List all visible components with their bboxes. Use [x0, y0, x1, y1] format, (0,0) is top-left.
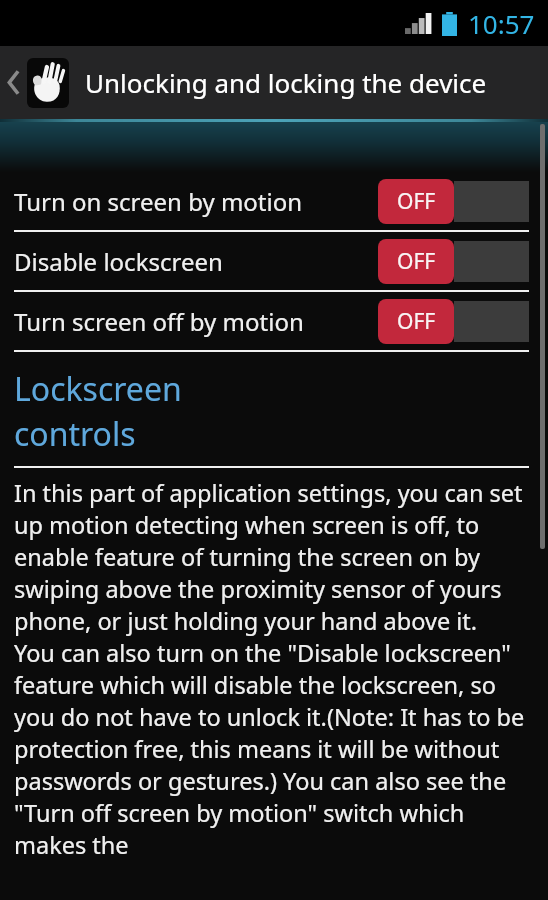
button[interactable]: Turn on: [378, 239, 529, 284]
button[interactable]: Navigate up: [0, 46, 72, 119]
staticText: In this part of application settings, yo…: [14, 477, 526, 861]
button[interactable]: Disable lockscreen: [0, 232, 548, 290]
button[interactable]: Turn on: [378, 299, 529, 344]
staticText: OFF: [397, 307, 436, 336]
staticText: 10:57: [468, 6, 535, 41]
staticText: Lockscreen controls: [14, 367, 182, 455]
staticText: Turn screen off by motion: [14, 305, 304, 338]
staticText: Disable lockscreen: [14, 245, 223, 278]
button[interactable]: Turn on screen by motion: [0, 172, 548, 230]
staticText: Turn on screen by motion: [14, 185, 303, 218]
button[interactable]: Turn on: [378, 179, 529, 224]
staticText: OFF: [397, 247, 436, 276]
button[interactable]: Turn screen off by motion: [0, 292, 548, 350]
staticText: OFF: [397, 187, 436, 216]
staticText: Unlocking and locking the device: [85, 65, 487, 100]
